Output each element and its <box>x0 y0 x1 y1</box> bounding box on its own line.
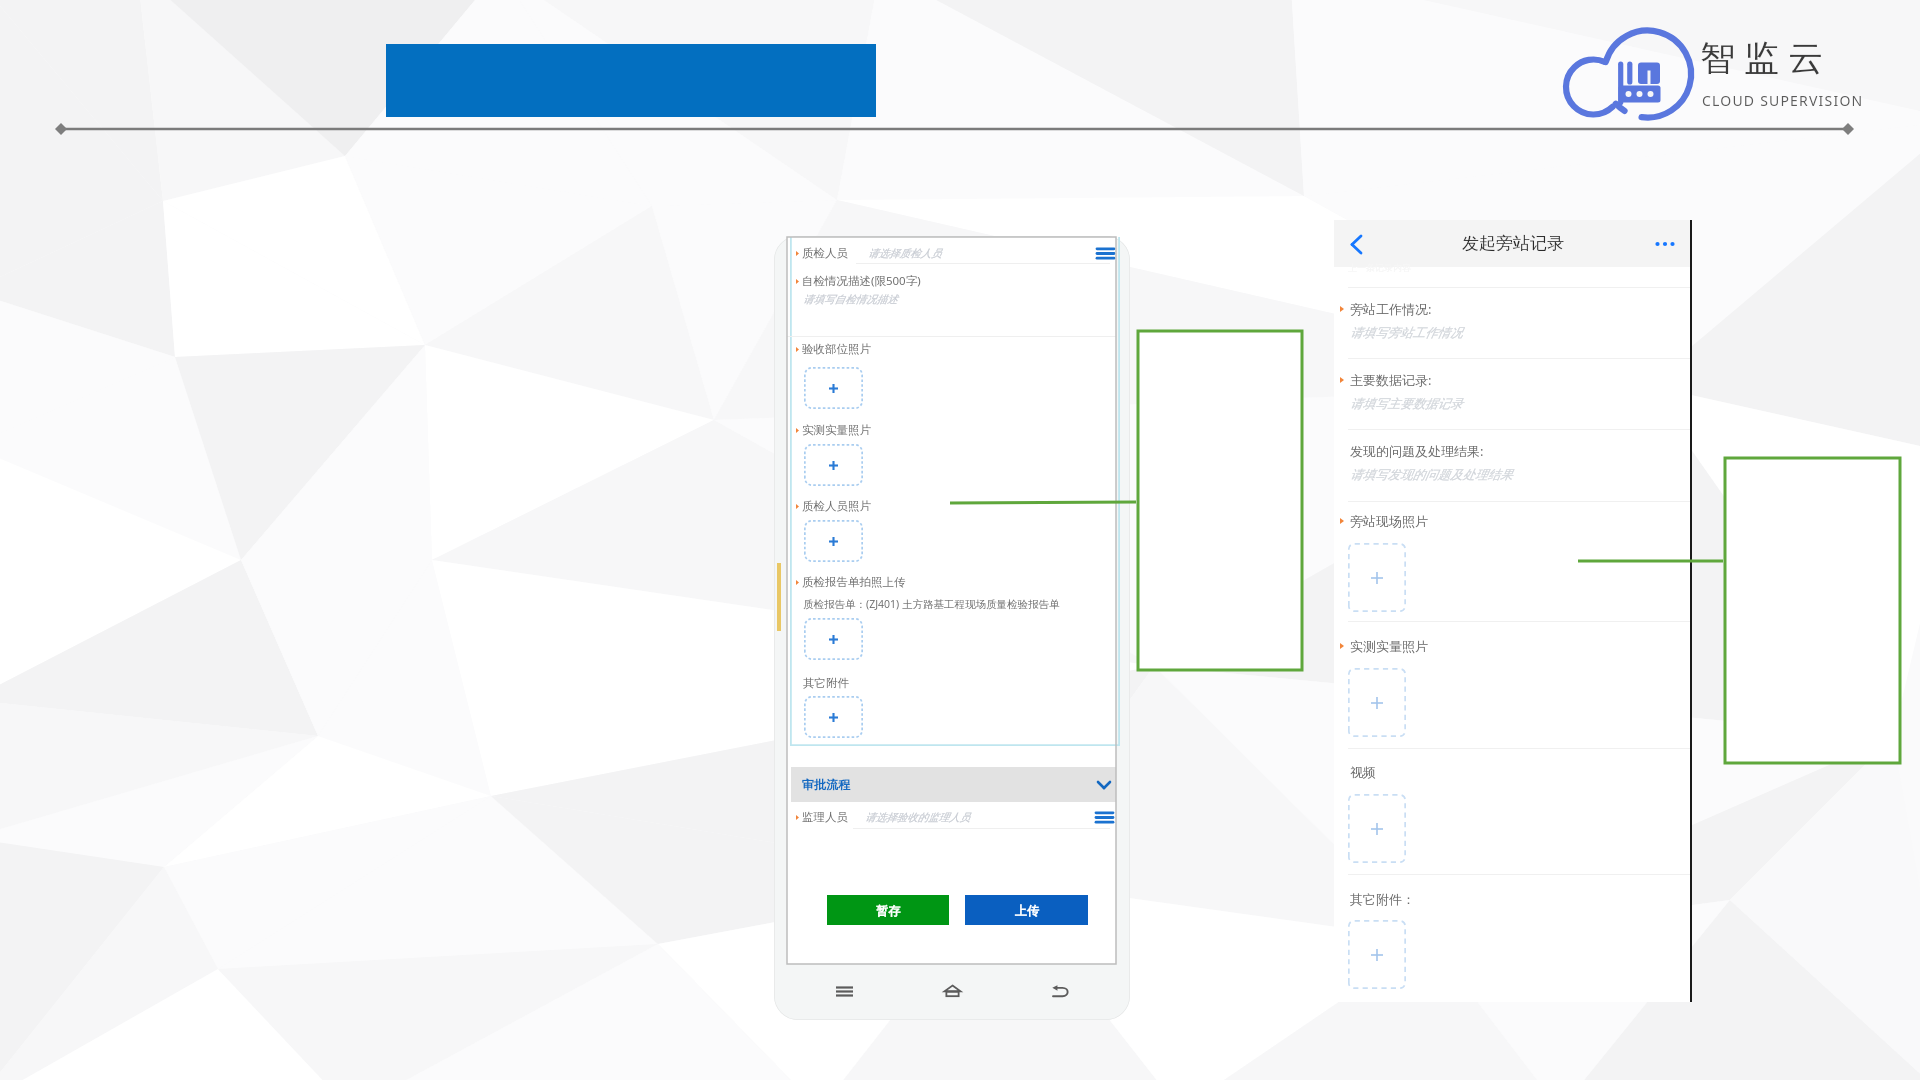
button[interactable]: Select inspector <box>1093 241 1117 265</box>
button[interactable]: Add photo <box>1348 794 1406 863</box>
button[interactable]: Back <box>1336 228 1376 260</box>
button[interactable] <box>1334 630 1690 658</box>
button[interactable]: Add photo <box>804 520 863 562</box>
staticText: 请填写发现的问题及处理结果 <box>1350 467 1513 483</box>
button[interactable]: Add photo <box>1348 543 1406 612</box>
staticText: 质检人员照片 <box>802 499 871 513</box>
staticText: 实测实量照片 <box>802 423 871 437</box>
staticText: 智 监 云 <box>1700 33 1824 81</box>
staticText: 验收部位照片 <box>802 342 871 356</box>
staticText: 请填写旁站工作情况 <box>1350 325 1463 341</box>
button[interactable]: Add photo <box>804 367 863 409</box>
staticText: 其它附件 <box>803 676 849 690</box>
staticText: 质检人员 <box>802 246 848 260</box>
button[interactable] <box>1334 292 1690 350</box>
staticText: 请选择质检人员 <box>868 247 942 260</box>
button[interactable] <box>1334 505 1690 533</box>
staticText: 审批流程 <box>802 777 850 792</box>
staticText: CLOUD SUPERVISION <box>1702 91 1864 110</box>
staticText: 监理人员 <box>802 810 848 824</box>
button[interactable]: Add photo <box>804 696 863 738</box>
staticText: 请填写自检情况描述 <box>803 293 898 306</box>
button[interactable] <box>1334 363 1690 421</box>
staticText: 发现的问题及处理结果: <box>1350 442 1484 460</box>
button[interactable] <box>1334 883 1690 911</box>
staticText: 旁站工作情况: <box>1350 300 1432 318</box>
staticText: 质检报告单：(ZJ401) 土方路基工程现场质量检验报告单 <box>803 597 1060 611</box>
staticText: 质检报告单拍照上传 <box>802 575 906 589</box>
button[interactable]: Back <box>1042 973 1078 1009</box>
staticText: 发起旁站记录 <box>1462 233 1564 254</box>
staticText: 实测实量照片 <box>1350 638 1428 654</box>
button[interactable] <box>1334 756 1690 784</box>
button[interactable]: Recents <box>826 973 862 1009</box>
staticText: 上传 <box>1015 903 1039 918</box>
staticText: 视频 <box>1350 764 1376 780</box>
button[interactable]: 上传 <box>965 895 1088 925</box>
staticText: 自检情况描述(限500字) <box>802 273 921 289</box>
staticText: 请填写主要数据记录 <box>1350 396 1463 412</box>
staticText: 旁站现场照片 <box>1350 513 1428 529</box>
button[interactable]: More options <box>1644 228 1686 260</box>
button[interactable] <box>791 240 1116 266</box>
button[interactable]: Add photo <box>1348 920 1406 989</box>
staticText: 上一条记录内容 <box>1348 262 1411 273</box>
button[interactable]: Add photo <box>804 618 863 660</box>
button[interactable]: Select supervisor <box>1092 805 1116 829</box>
staticText: 暂存 <box>876 903 900 918</box>
staticText: 请选择验收的监理人员 <box>865 811 970 824</box>
button[interactable]: Add photo <box>1348 668 1406 737</box>
button[interactable] <box>791 270 1116 330</box>
button[interactable]: Add photo <box>804 444 863 486</box>
button[interactable] <box>791 804 1116 830</box>
staticText: 主要数据记录: <box>1350 371 1432 389</box>
staticText: 其它附件： <box>1350 891 1415 907</box>
button[interactable]: 暂存 <box>827 895 949 925</box>
button[interactable]: Home <box>934 973 970 1009</box>
button[interactable] <box>1334 434 1690 492</box>
button[interactable]: 审批流程 <box>791 767 1116 802</box>
